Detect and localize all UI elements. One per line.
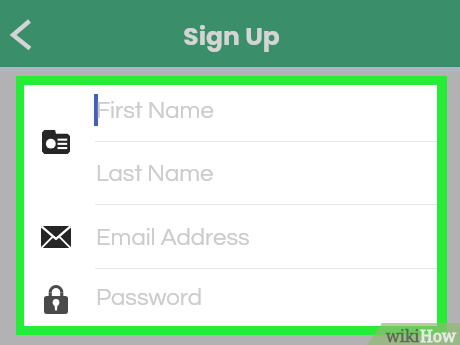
staticText: First Name [96, 98, 214, 123]
staticText: Last Name [96, 161, 214, 186]
staticText: Password [96, 285, 202, 310]
staticText: Email Address [96, 225, 250, 250]
button[interactable]: First Name [24, 85, 437, 142]
button[interactable]: Name [42, 130, 70, 154]
button[interactable]: Email [41, 226, 71, 248]
staticText: Sign Up [183, 19, 280, 54]
button[interactable]: Last Name [24, 142, 437, 205]
staticText: wiki [386, 325, 420, 345]
button[interactable]: Password [24, 269, 437, 326]
button[interactable]: Email Address [24, 205, 437, 269]
staticText: How [420, 325, 456, 345]
button[interactable]: Password [44, 285, 68, 314]
button[interactable]: Back [4, 12, 38, 56]
